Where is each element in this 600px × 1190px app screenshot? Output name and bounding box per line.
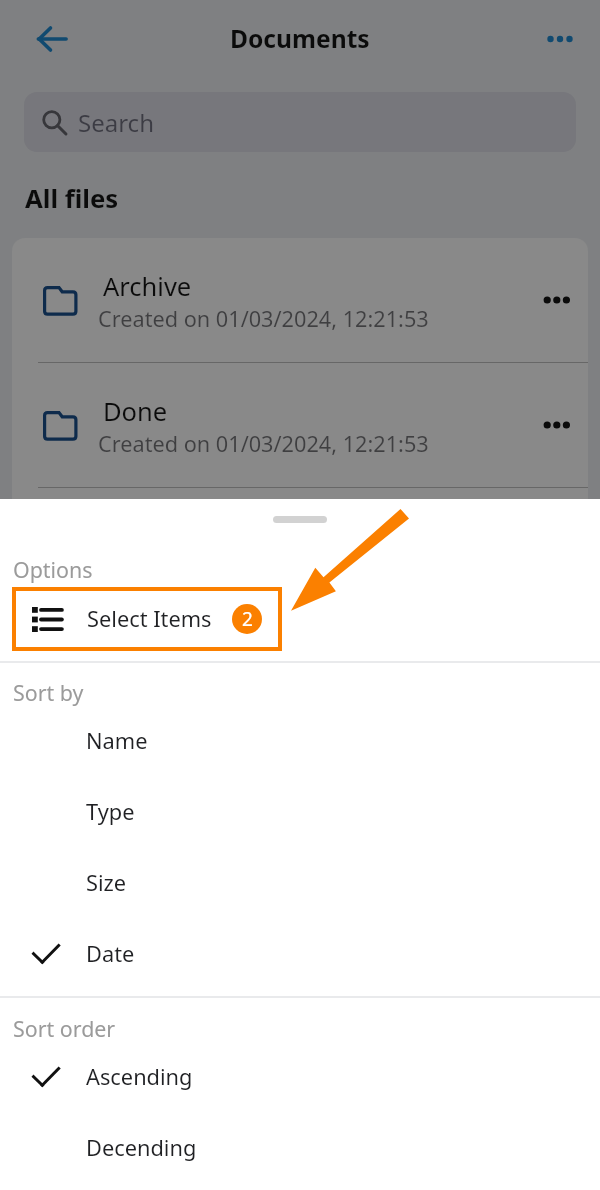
button[interactable]: Date — [0, 918, 600, 989]
staticText: Size — [86, 868, 127, 898]
staticText: Date — [86, 939, 135, 969]
button[interactable]: Size — [0, 847, 600, 918]
button[interactable]: Item options — [535, 403, 579, 447]
staticText: Type — [86, 797, 135, 827]
button[interactable]: Name — [0, 705, 600, 776]
button[interactable]: Item options — [535, 278, 579, 322]
staticText: Select Items — [87, 604, 212, 634]
button[interactable]: Back — [28, 15, 76, 63]
button[interactable]: Other — [12, 488, 588, 612]
staticText: Search — [78, 106, 154, 139]
button[interactable]: Ascending — [0, 1041, 600, 1112]
staticText: Sort by — [13, 678, 84, 707]
staticText: Ascending — [86, 1062, 193, 1092]
staticText: Documents — [230, 22, 370, 56]
staticText: Created on 01/03/2024, 12:21:53 — [98, 304, 429, 334]
button[interactable]: Archive — [12, 238, 588, 362]
staticText: Archive — [103, 269, 192, 304]
staticText: Created on 01/03/2024, 12:21:53 — [98, 554, 429, 584]
staticText: 2 — [242, 606, 253, 632]
button[interactable]: Done — [12, 363, 588, 487]
button[interactable]: Decending — [0, 1112, 600, 1183]
staticText: Decending — [86, 1133, 197, 1163]
staticText: Name — [86, 726, 148, 756]
staticText: Done — [103, 394, 168, 429]
staticText: All files — [25, 181, 119, 216]
button[interactable]: Type — [0, 776, 600, 847]
staticText: Sort order — [13, 1014, 116, 1043]
button[interactable]: More options — [538, 17, 582, 61]
staticText: Options — [13, 555, 93, 584]
button[interactable]: Search — [24, 92, 576, 152]
staticText: Created on 01/03/2024, 12:21:53 — [98, 429, 429, 459]
button[interactable]: Select Items — [16, 591, 278, 647]
